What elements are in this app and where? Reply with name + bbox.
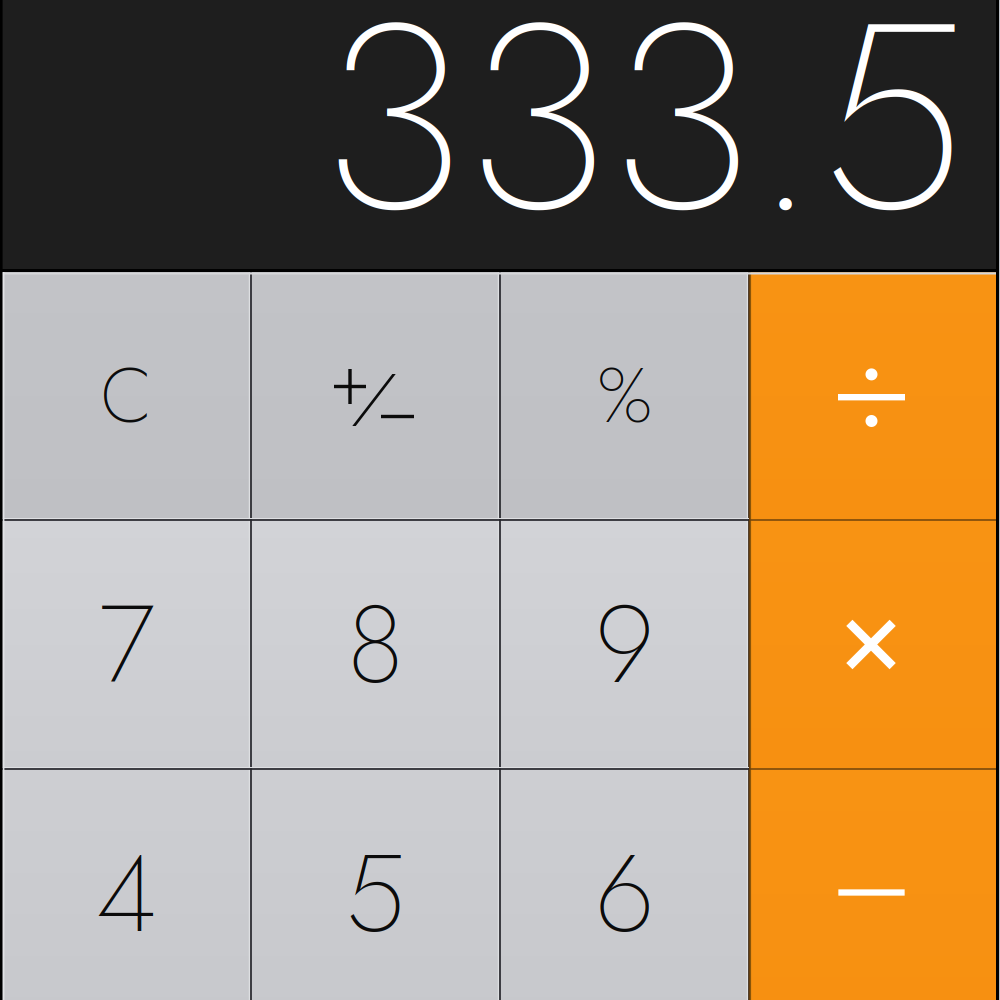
- button[interactable]: 5: [251, 769, 500, 1000]
- button[interactable]: 7: [2, 520, 251, 769]
- staticText: 9: [595, 566, 654, 723]
- button[interactable]: 4: [2, 769, 251, 1000]
- button[interactable]: Multiply: [749, 520, 998, 769]
- staticText: 6: [595, 815, 654, 972]
- staticText: 7: [98, 566, 154, 723]
- staticText: 8: [347, 566, 404, 723]
- button[interactable]: 8: [251, 520, 500, 769]
- staticText: 5: [345, 815, 405, 972]
- button[interactable]: Subtract: [749, 769, 998, 1000]
- button[interactable]: Plus minus: [251, 271, 500, 520]
- staticText: 333.5: [322, 0, 967, 305]
- staticText: C: [100, 341, 152, 450]
- staticText: 4: [96, 815, 157, 972]
- button[interactable]: %: [500, 271, 749, 520]
- button[interactable]: 6: [500, 769, 749, 1000]
- staticText: %: [597, 341, 651, 450]
- button[interactable]: C: [2, 271, 251, 520]
- button[interactable]: Divide: [749, 271, 998, 520]
- button[interactable]: 9: [500, 520, 749, 769]
